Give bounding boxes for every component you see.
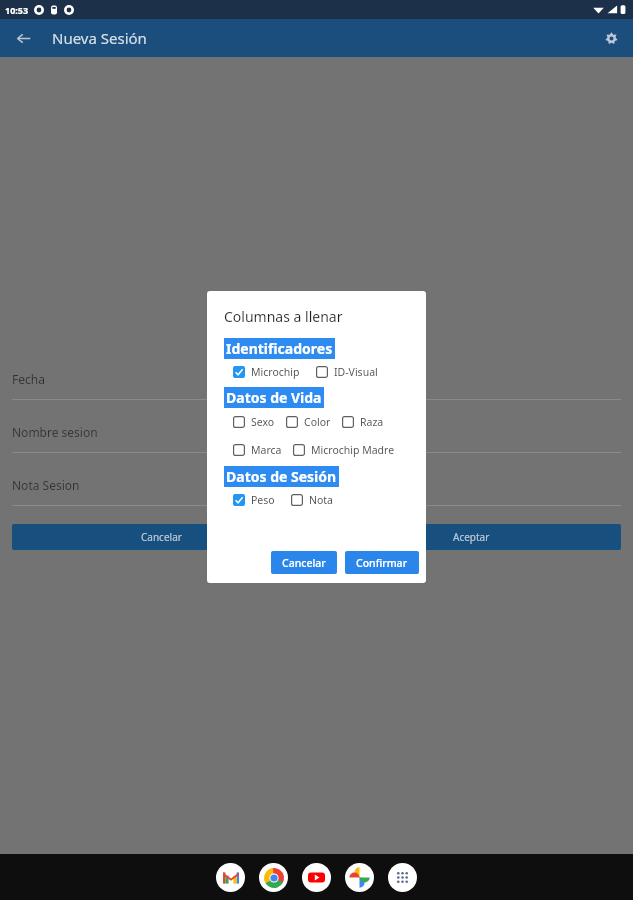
button[interactable]: Gmail [216,863,245,892]
staticText: Peso [251,493,275,507]
staticText: Confirmar [356,556,408,570]
staticText: Identificadores [226,339,333,358]
button[interactable]: Cancelar [12,524,310,550]
staticText: Microchip [251,365,300,379]
button[interactable]: Aceptar [322,524,621,550]
staticText: Datos de Vida [226,388,322,407]
staticText: Marca [251,443,282,457]
staticText: Cancelar [141,530,182,544]
staticText: Nombre sesion [12,424,98,440]
button[interactable]: Marca [233,443,282,457]
staticText: Columnas a llenar [224,307,343,326]
button[interactable]: Cancelar [271,551,337,574]
button[interactable]: Peso [233,493,275,507]
button[interactable]: Microchip [233,365,300,379]
staticText: Sexo [251,415,275,429]
button[interactable]: Nombre sesion [12,424,621,453]
button[interactable]: Microchip Madre [293,443,395,457]
staticText: Color [304,415,331,429]
staticText: Nota Sesion [12,477,80,493]
staticText: Cancelar [282,556,326,570]
staticText: Aceptar [453,530,490,544]
button[interactable]: Google Photos [345,863,374,892]
button[interactable]: Raza [342,415,384,429]
staticText: Nueva Sesión [52,28,147,48]
button[interactable]: Nota [291,493,334,507]
staticText: Microchip Madre [311,443,395,457]
staticText: Raza [360,415,384,429]
staticText: Nota [309,493,334,507]
button[interactable]: Color [286,415,331,429]
button[interactable]: YouTube [302,863,331,892]
button[interactable]: Confirmar [345,551,419,574]
button[interactable]: ID-Visual [316,365,378,379]
button[interactable]: Chrome [259,863,288,892]
button[interactable]: Back [8,23,38,53]
staticText: Fecha [12,371,45,387]
button[interactable]: Sexo [233,415,275,429]
staticText: 10:53 [5,4,29,16]
button[interactable]: Fecha [12,371,621,400]
button[interactable]: Settings [596,23,626,53]
staticText: ID-Visual [334,365,378,379]
staticText: Datos de Sesión [226,467,337,486]
button[interactable]: All apps [388,863,417,892]
button[interactable]: Nota Sesion [12,477,621,506]
